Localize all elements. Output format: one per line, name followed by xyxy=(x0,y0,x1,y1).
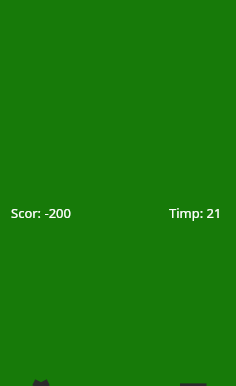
staticText: Timp: 21 xyxy=(169,204,222,222)
staticText: Scor: -200 xyxy=(11,204,71,222)
